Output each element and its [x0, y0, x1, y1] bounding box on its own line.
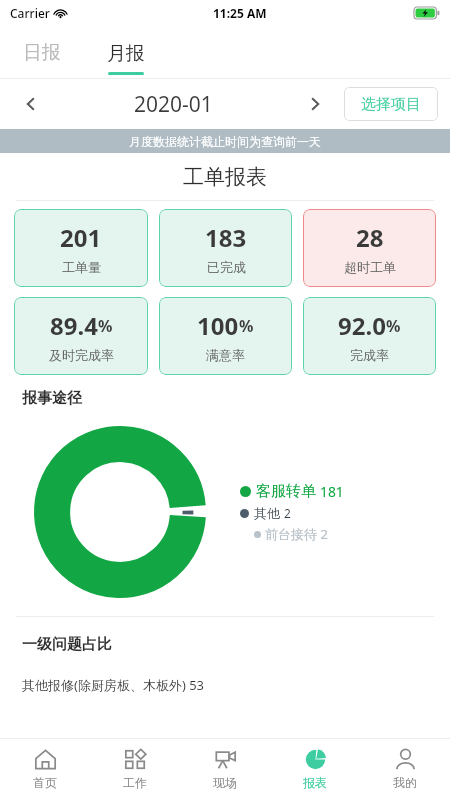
button[interactable]: 我的 [360, 738, 450, 800]
button[interactable]: 月报 [84, 26, 168, 79]
button[interactable]: 89.4 [14, 297, 148, 375]
staticText: 2 [284, 505, 291, 521]
staticText: 首页 [33, 775, 57, 790]
staticText: 我的 [393, 775, 417, 790]
button[interactable]: 183 [159, 209, 292, 287]
button[interactable]: Previous month [12, 85, 50, 123]
staticText: 月报 [107, 42, 145, 66]
staticText: 日报 [23, 41, 61, 65]
button[interactable]: 报表 [270, 738, 360, 800]
staticText: 11:25 AM [213, 5, 267, 21]
staticText: 89.4 [50, 309, 98, 342]
staticText: 完成率 [350, 347, 389, 363]
staticText: 满意率 [206, 347, 245, 363]
staticText: 一级问题占比 [22, 635, 112, 654]
staticText: 及时完成率 [49, 347, 114, 363]
staticText: % [386, 315, 401, 337]
button[interactable]: 工作 [90, 738, 180, 800]
staticText: 月度数据统计截止时间为查询前一天 [129, 134, 321, 149]
staticText: Carrier [10, 5, 50, 21]
button[interactable]: 92.0 [303, 297, 436, 375]
button[interactable]: 201 [14, 209, 148, 287]
staticText: 2020-01 [134, 90, 213, 119]
staticText: 201 [60, 221, 102, 254]
staticText: 选择项目 [361, 95, 421, 114]
staticText: 超时工单 [344, 259, 396, 275]
button[interactable]: Next month [296, 85, 334, 123]
staticText: 181 [320, 482, 344, 501]
staticText: 客服转单 [256, 482, 316, 501]
staticText: % [98, 315, 113, 337]
button[interactable]: 日报 [0, 26, 84, 79]
staticText: 前台接待 2 [265, 525, 328, 543]
button[interactable]: 28 [303, 209, 436, 287]
staticText: 其他报修(除厨房板、木板外) 53 [22, 676, 205, 694]
staticText: 92.0 [338, 309, 386, 342]
staticText: 其他 [254, 505, 280, 521]
staticText: 28 [356, 221, 384, 254]
staticText: % [239, 315, 254, 337]
staticText: 现场 [213, 775, 237, 790]
staticText: 工作 [123, 775, 147, 790]
button[interactable]: 选择项目 [344, 87, 438, 121]
staticText: 已完成 [207, 259, 246, 275]
button[interactable]: 现场 [180, 738, 270, 800]
staticText: 183 [205, 221, 247, 254]
button[interactable]: 首页 [0, 738, 90, 800]
staticText: 工单报表 [183, 164, 267, 190]
staticText: 报事途径 [22, 389, 82, 408]
staticText: 报表 [303, 775, 327, 790]
staticText: 工单量 [62, 259, 101, 275]
staticText: 100 [197, 309, 239, 342]
button[interactable]: 100 [159, 297, 292, 375]
